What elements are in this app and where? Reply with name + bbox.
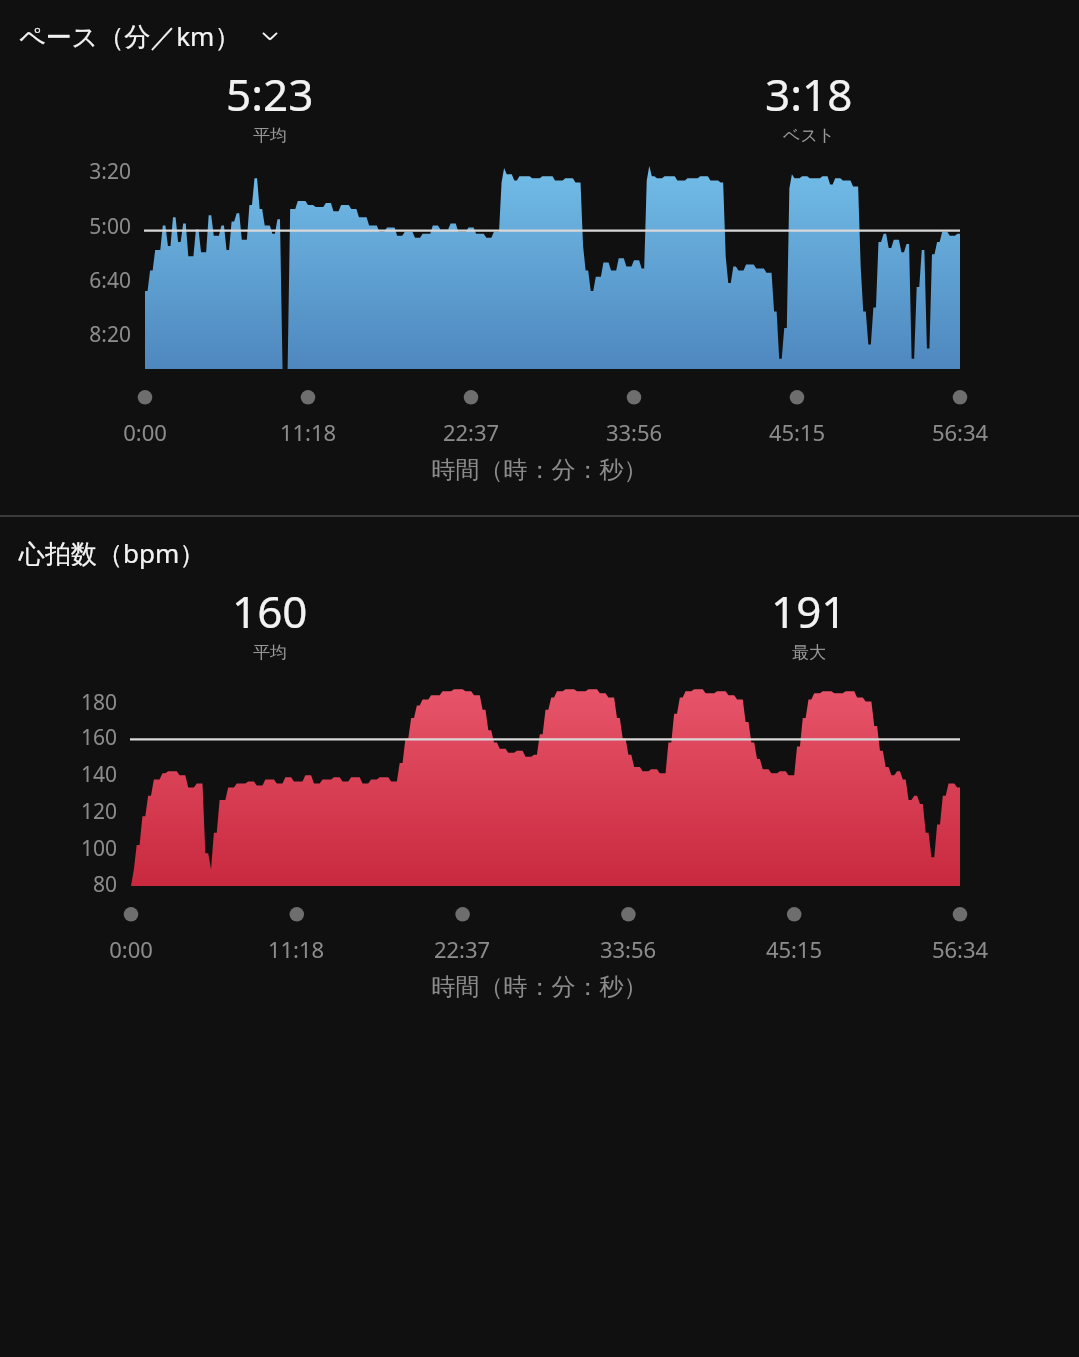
staticText: 平均 [253, 642, 287, 663]
staticText: 心拍数（bpm） [19, 535, 206, 571]
staticText: 191 [771, 581, 847, 641]
staticText: 0:00 [87, 934, 175, 964]
staticText: 120 [0, 797, 117, 826]
staticText: 160 [0, 723, 117, 752]
staticText: 6:40 [0, 266, 131, 295]
staticText: 56:34 [916, 417, 1004, 447]
staticText: 5:23 [226, 64, 314, 124]
staticText: 22:37 [427, 417, 515, 447]
staticText: ペース（分／km） [19, 18, 241, 54]
staticText: 180 [0, 688, 117, 717]
staticText: ベスト [783, 125, 836, 146]
staticText: 時間（時：分：秒） [0, 972, 1079, 1002]
staticText: 11:18 [264, 417, 352, 447]
staticText: 22:37 [418, 934, 506, 964]
staticText: 160 [232, 581, 308, 641]
staticText: 45:15 [753, 417, 841, 447]
staticText: 時間（時：分：秒） [0, 455, 1079, 485]
staticText: 11:18 [252, 934, 340, 964]
staticText: 140 [0, 760, 117, 789]
staticText: 33:56 [590, 417, 678, 447]
staticText: 0:00 [101, 417, 189, 447]
staticText: 33:56 [584, 934, 672, 964]
staticText: 80 [0, 870, 117, 899]
staticText: 100 [0, 834, 117, 863]
staticText: 5:00 [0, 212, 131, 241]
other: Change metric [257, 23, 283, 49]
staticText: 平均 [253, 125, 287, 146]
button[interactable]: 心拍数（bpm） [0, 531, 1079, 575]
staticText: 45:15 [750, 934, 838, 964]
staticText: 3:18 [765, 64, 853, 124]
button[interactable]: ペース（分／km） [0, 14, 1079, 58]
staticText: 56:34 [916, 934, 1004, 964]
staticText: 8:20 [0, 320, 131, 349]
staticText: 3:20 [0, 157, 131, 186]
staticText: 最大 [792, 642, 826, 663]
